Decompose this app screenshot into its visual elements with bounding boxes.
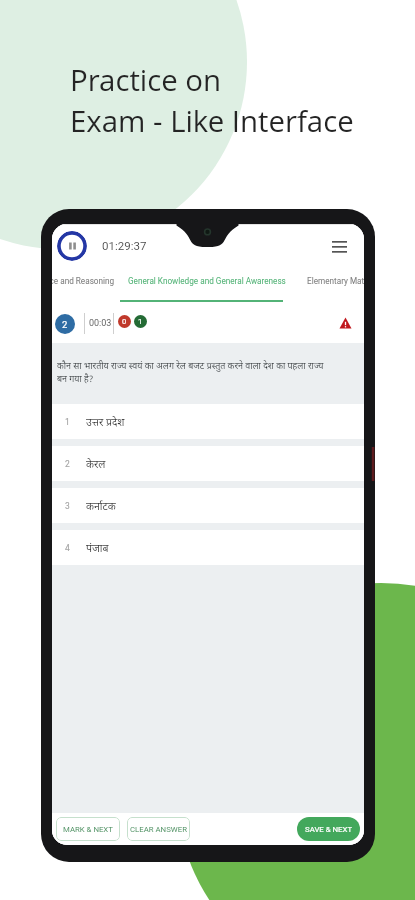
button[interactable]: 4 bbox=[52, 530, 364, 565]
staticText: Elementary Mathem bbox=[307, 276, 364, 286]
staticText: 2 bbox=[62, 319, 68, 330]
button[interactable]: 2 bbox=[55, 314, 75, 334]
staticText: 0 bbox=[122, 317, 127, 326]
staticText: CLEAR ANSWER bbox=[130, 825, 187, 834]
staticText: 4 bbox=[65, 543, 70, 553]
staticText: उत्तर प्रदेश bbox=[86, 415, 125, 429]
staticText: 1 bbox=[65, 417, 70, 427]
button[interactable]: 2 bbox=[52, 446, 364, 481]
staticText: कौन सा भारतीय राज्य स्वयं का अलग रेल बजट… bbox=[57, 359, 324, 384]
staticText: 01:29:37 bbox=[102, 239, 147, 252]
button[interactable]: CLEAR ANSWER bbox=[127, 817, 190, 841]
staticText: SAVE & NEXT bbox=[305, 825, 353, 834]
staticText: पंजाब bbox=[86, 541, 109, 555]
button[interactable]: Report question bbox=[336, 314, 354, 332]
button[interactable]: Pause timer bbox=[57, 231, 87, 261]
staticText: 00:03 bbox=[89, 318, 112, 329]
staticText: 3 bbox=[65, 501, 70, 511]
staticText: 1 bbox=[138, 317, 143, 326]
button[interactable]: General Knowledge and General Awareness bbox=[128, 276, 284, 296]
button[interactable]: 1 bbox=[52, 404, 364, 439]
staticText: केरल bbox=[86, 457, 106, 471]
button[interactable]: Menu bbox=[326, 233, 352, 259]
staticText: कर्नाटक bbox=[86, 499, 116, 513]
staticText: 2 bbox=[65, 459, 70, 469]
staticText: MARK & NEXT bbox=[63, 825, 113, 834]
button[interactable]: MARK & NEXT bbox=[56, 817, 120, 841]
button[interactable]: SAVE & NEXT bbox=[297, 817, 360, 841]
button[interactable]: 3 bbox=[52, 488, 364, 523]
button[interactable]: Elementary Mathem bbox=[307, 276, 364, 296]
staticText: General Knowledge and General Awareness bbox=[128, 276, 284, 286]
button[interactable]: nce and Reasoning bbox=[52, 276, 114, 296]
staticText: nce and Reasoning bbox=[52, 276, 114, 286]
staticText: Practice on Exam - Like Interface bbox=[70, 60, 354, 141]
